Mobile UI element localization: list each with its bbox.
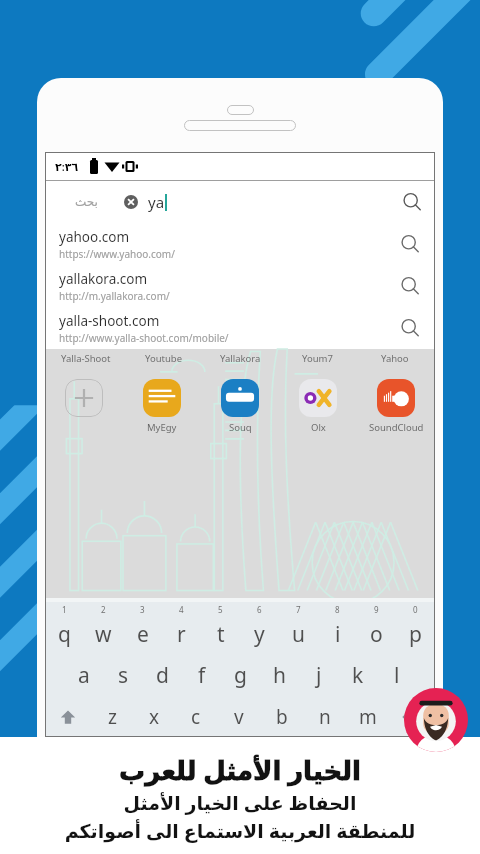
button[interactable]: Clear (124, 195, 138, 209)
staticText: https://www.yahoo.com/ (59, 247, 175, 261)
button[interactable]: Youm7 (279, 352, 356, 365)
staticText: Youm7 (302, 352, 333, 365)
button[interactable]: g (221, 653, 260, 697)
staticText: n (319, 704, 331, 730)
staticText: Yahoo (381, 352, 409, 365)
button[interactable]: Search yahoo.com (399, 233, 421, 255)
staticText: g (234, 661, 247, 690)
staticText: الخيار الأمثل للعرب (0, 752, 480, 787)
button[interactable]: z (91, 697, 133, 737)
staticText: x (149, 704, 160, 730)
staticText: i (335, 620, 341, 649)
button[interactable]: Youtube (125, 352, 202, 365)
button[interactable]: Search (401, 191, 423, 213)
button[interactable]: بحث (45, 181, 435, 223)
staticText: p (409, 620, 422, 649)
button[interactable]: m (346, 697, 389, 737)
button[interactable]: r (162, 615, 201, 653)
staticText: ٢:٣٦ (55, 159, 79, 174)
staticText: b (276, 704, 288, 730)
staticText: d (156, 661, 169, 690)
staticText: q (58, 620, 71, 649)
staticText: ya (148, 192, 165, 212)
button[interactable]: Shift (45, 697, 91, 737)
staticText: MyEgy (147, 421, 177, 434)
button[interactable]: n (303, 697, 346, 737)
button[interactable]: u (279, 615, 318, 653)
button[interactable]: Backspace (389, 697, 435, 737)
staticText: k (352, 661, 364, 690)
button[interactable]: SoundCloud (357, 379, 435, 434)
button[interactable]: a (64, 653, 104, 697)
staticText: SoundCloud (369, 421, 424, 434)
button[interactable]: k (338, 653, 377, 697)
staticText: w (95, 620, 112, 649)
staticText: h (273, 661, 286, 690)
button[interactable]: v (217, 697, 260, 737)
staticText: للمنطقة العربية الاستماع الى أصواتكم (0, 818, 480, 844)
button[interactable]: d (143, 653, 182, 697)
button[interactable]: Yahoo (356, 352, 433, 365)
button[interactable]: Search yalla-shoot.com (399, 317, 421, 339)
staticText: e (137, 620, 149, 649)
staticText: o (370, 620, 383, 649)
button[interactable]: Yalla-Shoot (47, 352, 125, 365)
button[interactable]: e (123, 615, 162, 653)
staticText: 5 (218, 604, 223, 615)
staticText: m (359, 704, 377, 730)
button[interactable] (45, 379, 123, 417)
button[interactable]: Yallakora (202, 352, 279, 365)
button[interactable]: Assistant (404, 688, 468, 752)
button[interactable]: j (299, 653, 338, 697)
staticText: a (78, 661, 90, 690)
button[interactable]: Souq (201, 379, 279, 434)
staticText: Yallakora (220, 352, 261, 365)
button[interactable]: q (45, 615, 84, 653)
button[interactable]: Olx (279, 379, 357, 434)
button[interactable]: b (260, 697, 303, 737)
staticText: 7 (296, 604, 301, 615)
staticText: l (394, 661, 400, 690)
button[interactable]: c (175, 697, 217, 737)
button[interactable]: Search yallakora.com (399, 275, 421, 297)
staticText: 0 (413, 604, 418, 615)
staticText: c (191, 704, 201, 730)
button[interactable]: t (201, 615, 240, 653)
button[interactable]: yallakora.com (45, 265, 435, 307)
staticText: Youtube (145, 352, 183, 365)
staticText: j (316, 661, 322, 690)
button[interactable]: o (357, 615, 396, 653)
staticText: Olx (311, 421, 326, 434)
button[interactable]: yahoo.com (45, 223, 435, 265)
staticText: الحفاظ على الخيار الأمثل (0, 790, 480, 816)
staticText: 4 (179, 604, 184, 615)
staticText: 9 (374, 604, 379, 615)
button[interactable]: p (396, 615, 435, 653)
staticText: بحث (75, 195, 98, 209)
button[interactable]: yalla-shoot.com (45, 307, 435, 349)
button[interactable]: f (182, 653, 221, 697)
staticText: 3 (140, 604, 145, 615)
staticText: yalla-shoot.com (59, 312, 160, 330)
staticText: v (234, 704, 244, 730)
staticText: t (217, 620, 225, 649)
staticText: 6 (257, 604, 262, 615)
button[interactable]: x (133, 697, 175, 737)
button[interactable]: i (318, 615, 357, 653)
staticText: s (118, 661, 129, 690)
button[interactable]: h (260, 653, 299, 697)
button[interactable]: y (240, 615, 279, 653)
button[interactable]: l (377, 653, 416, 697)
button[interactable]: MyEgy (123, 379, 201, 434)
button[interactable]: w (84, 615, 123, 653)
button[interactable]: s (104, 653, 143, 697)
staticText: Souq (229, 421, 252, 434)
staticText: 1 (62, 604, 67, 615)
staticText: Yalla-Shoot (61, 352, 111, 365)
staticText: y (254, 620, 265, 649)
staticText: http://m.yallakora.com/ (59, 289, 170, 303)
staticText: yahoo.com (59, 228, 130, 246)
staticText: z (108, 704, 117, 730)
staticText: 2 (101, 604, 106, 615)
staticText: r (177, 620, 186, 649)
